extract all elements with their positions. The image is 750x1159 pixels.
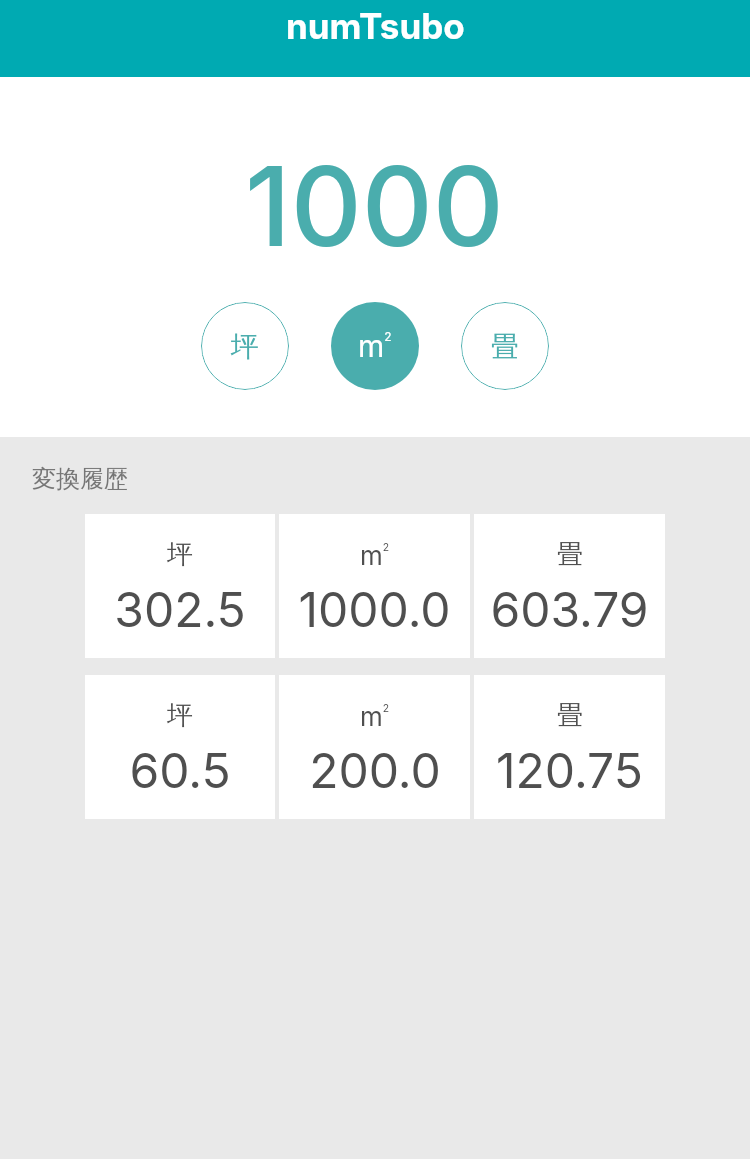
staticText: 坪 <box>167 538 193 571</box>
staticText: m2 <box>360 540 390 571</box>
button[interactable]: Jo unit <box>461 302 549 390</box>
button[interactable]: 畳 <box>474 675 665 819</box>
staticText: m2 <box>358 328 392 364</box>
staticText: 120.75 <box>496 741 643 799</box>
button[interactable]: Tsubo unit <box>201 302 289 390</box>
staticText: 603.79 <box>490 580 649 638</box>
staticText: 1000.0 <box>298 580 451 638</box>
staticText: 畳 <box>557 699 583 732</box>
staticText: 60.5 <box>129 741 231 799</box>
button[interactable]: m2 <box>279 675 470 819</box>
staticText: m2 <box>360 701 390 732</box>
staticText: 変換履歴 <box>32 464 128 494</box>
button[interactable]: 畳 <box>474 514 665 658</box>
button[interactable]: Square metre unit <box>331 302 419 390</box>
staticText: 302.5 <box>114 580 246 638</box>
button[interactable]: 坪 <box>85 514 275 658</box>
staticText: 坪 <box>167 699 193 732</box>
button[interactable]: m2 <box>279 514 470 658</box>
staticText: 坪 <box>231 329 259 364</box>
button[interactable]: numTsubo <box>0 0 750 77</box>
staticText: 畳 <box>557 538 583 571</box>
staticText: 畳 <box>491 329 519 364</box>
staticText: numTsubo <box>286 5 465 47</box>
button[interactable]: 坪 <box>85 675 275 819</box>
staticText: 1000 <box>245 139 504 272</box>
staticText: 200.0 <box>309 741 441 799</box>
